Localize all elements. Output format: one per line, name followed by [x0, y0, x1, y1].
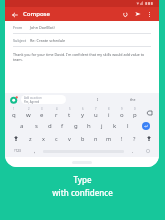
button[interactable]: More options [145, 10, 154, 19]
button[interactable]: I [97, 97, 99, 102]
staticText: m [106, 135, 112, 142]
staticText: g [74, 122, 78, 130]
staticText: . [132, 148, 134, 155]
staticText: 0 [134, 107, 136, 111]
staticText: o [120, 111, 124, 119]
staticText: z [29, 135, 32, 142]
button[interactable]: Emoji [139, 145, 157, 157]
staticText: ?123 [14, 149, 21, 153]
button[interactable]: 6 [76, 106, 89, 119]
staticText: h [87, 122, 91, 130]
button[interactable]: 7 [89, 106, 102, 119]
button[interactable]: 5 [63, 106, 76, 119]
button[interactable]: ? [128, 132, 141, 145]
button[interactable]: 0 [128, 106, 141, 119]
staticText: e [40, 111, 44, 119]
staticText: 5 [69, 107, 71, 111]
staticText: Compose [23, 10, 50, 18]
button[interactable]: 9 [115, 106, 128, 119]
staticText: 9 [121, 107, 123, 111]
staticText: j [101, 122, 103, 130]
staticText: Type [73, 174, 92, 185]
button[interactable]: d [43, 119, 56, 132]
staticText: w [26, 111, 31, 119]
button[interactable]: Send [133, 9, 143, 19]
staticText: ? [133, 135, 136, 142]
button[interactable]: Add as action [21, 95, 66, 104]
staticText: c [55, 135, 58, 142]
staticText: b [81, 135, 85, 142]
button[interactable]: the [130, 97, 136, 102]
staticText: 1 [13, 107, 15, 111]
staticText: y [81, 111, 85, 119]
button[interactable]: Attach [120, 9, 130, 19]
staticText: Add as action [24, 96, 42, 100]
button[interactable]: c [50, 132, 63, 145]
button[interactable]: 8 [102, 106, 115, 119]
staticText: , [34, 148, 36, 155]
staticText: 7 [95, 107, 97, 111]
staticText: with confidence [52, 187, 113, 198]
staticText: i [108, 111, 110, 119]
button[interactable]: 2 [21, 106, 35, 119]
button[interactable]: ?123 [7, 145, 28, 157]
button[interactable]: m [102, 132, 115, 145]
button[interactable]: l [121, 119, 134, 132]
button[interactable]: a [15, 119, 29, 132]
staticText: k [113, 122, 117, 130]
button[interactable]: g [69, 119, 82, 132]
staticText: ! [121, 135, 123, 142]
staticText: u [94, 111, 98, 119]
staticText: From [13, 25, 23, 30]
staticText: l [127, 122, 129, 130]
staticText: x [42, 135, 45, 142]
button[interactable]: Shift [7, 132, 24, 145]
button[interactable]: Back [10, 10, 19, 19]
staticText: q [12, 111, 16, 119]
button[interactable]: j [95, 119, 108, 132]
button[interactable]: z [24, 132, 37, 145]
button[interactable]: f [56, 119, 69, 132]
button[interactable]: 3 [35, 106, 49, 119]
button[interactable]: h [82, 119, 95, 132]
button[interactable]: x [37, 132, 50, 145]
staticText: Yes, Agreed [24, 100, 40, 104]
button[interactable]: , [28, 145, 41, 157]
button[interactable]: From [13, 21, 151, 34]
button[interactable]: Delete [141, 132, 157, 145]
staticText: t [68, 111, 71, 119]
staticText: Re: Create schedule [30, 38, 66, 43]
button[interactable]: Space [41, 145, 126, 157]
button[interactable]: s [29, 119, 43, 132]
staticText: a [20, 122, 24, 130]
button[interactable]: 1 [7, 106, 21, 119]
staticText: 4 [56, 107, 58, 111]
staticText: v [68, 135, 71, 142]
staticText: n [94, 135, 98, 142]
button[interactable]: Keyboard assistant [9, 95, 19, 105]
button[interactable]: . [126, 145, 139, 157]
button[interactable]: 4 [49, 106, 63, 119]
staticText: 3 [41, 107, 43, 111]
button[interactable]: v [63, 132, 76, 145]
staticText: Subject [13, 38, 27, 43]
staticText: f [61, 122, 64, 130]
staticText: p [133, 111, 137, 119]
button[interactable]: ! [115, 132, 128, 145]
staticText: 2 [28, 107, 30, 111]
button[interactable]: b [76, 132, 89, 145]
staticText: Thank you for your time David. I'm confi… [13, 52, 151, 62]
staticText: d [48, 122, 52, 130]
staticText: 6 [82, 107, 84, 111]
button[interactable]: Subject [13, 34, 151, 47]
button[interactable]: Enter [134, 119, 157, 132]
button[interactable]: Backspace [141, 106, 157, 119]
staticText: s [35, 122, 38, 130]
button[interactable]: n [89, 132, 102, 145]
button[interactable]: k [108, 119, 121, 132]
staticText: John Doe(Bot) [30, 25, 55, 30]
staticText: 8 [108, 107, 110, 111]
staticText: r [55, 111, 58, 119]
